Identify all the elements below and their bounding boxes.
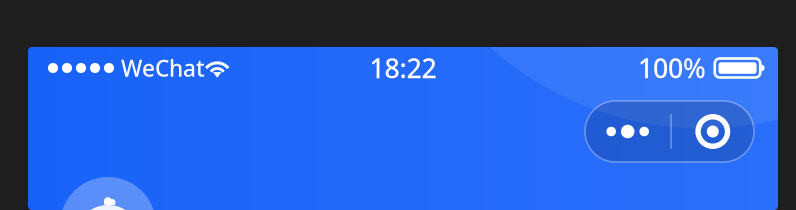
button[interactable]: More: [585, 101, 670, 162]
staticText: WeChat: [121, 53, 205, 83]
button[interactable]: Close mini program: [672, 101, 754, 162]
staticText: 18:22: [369, 50, 436, 86]
staticText: 100%: [638, 50, 706, 86]
